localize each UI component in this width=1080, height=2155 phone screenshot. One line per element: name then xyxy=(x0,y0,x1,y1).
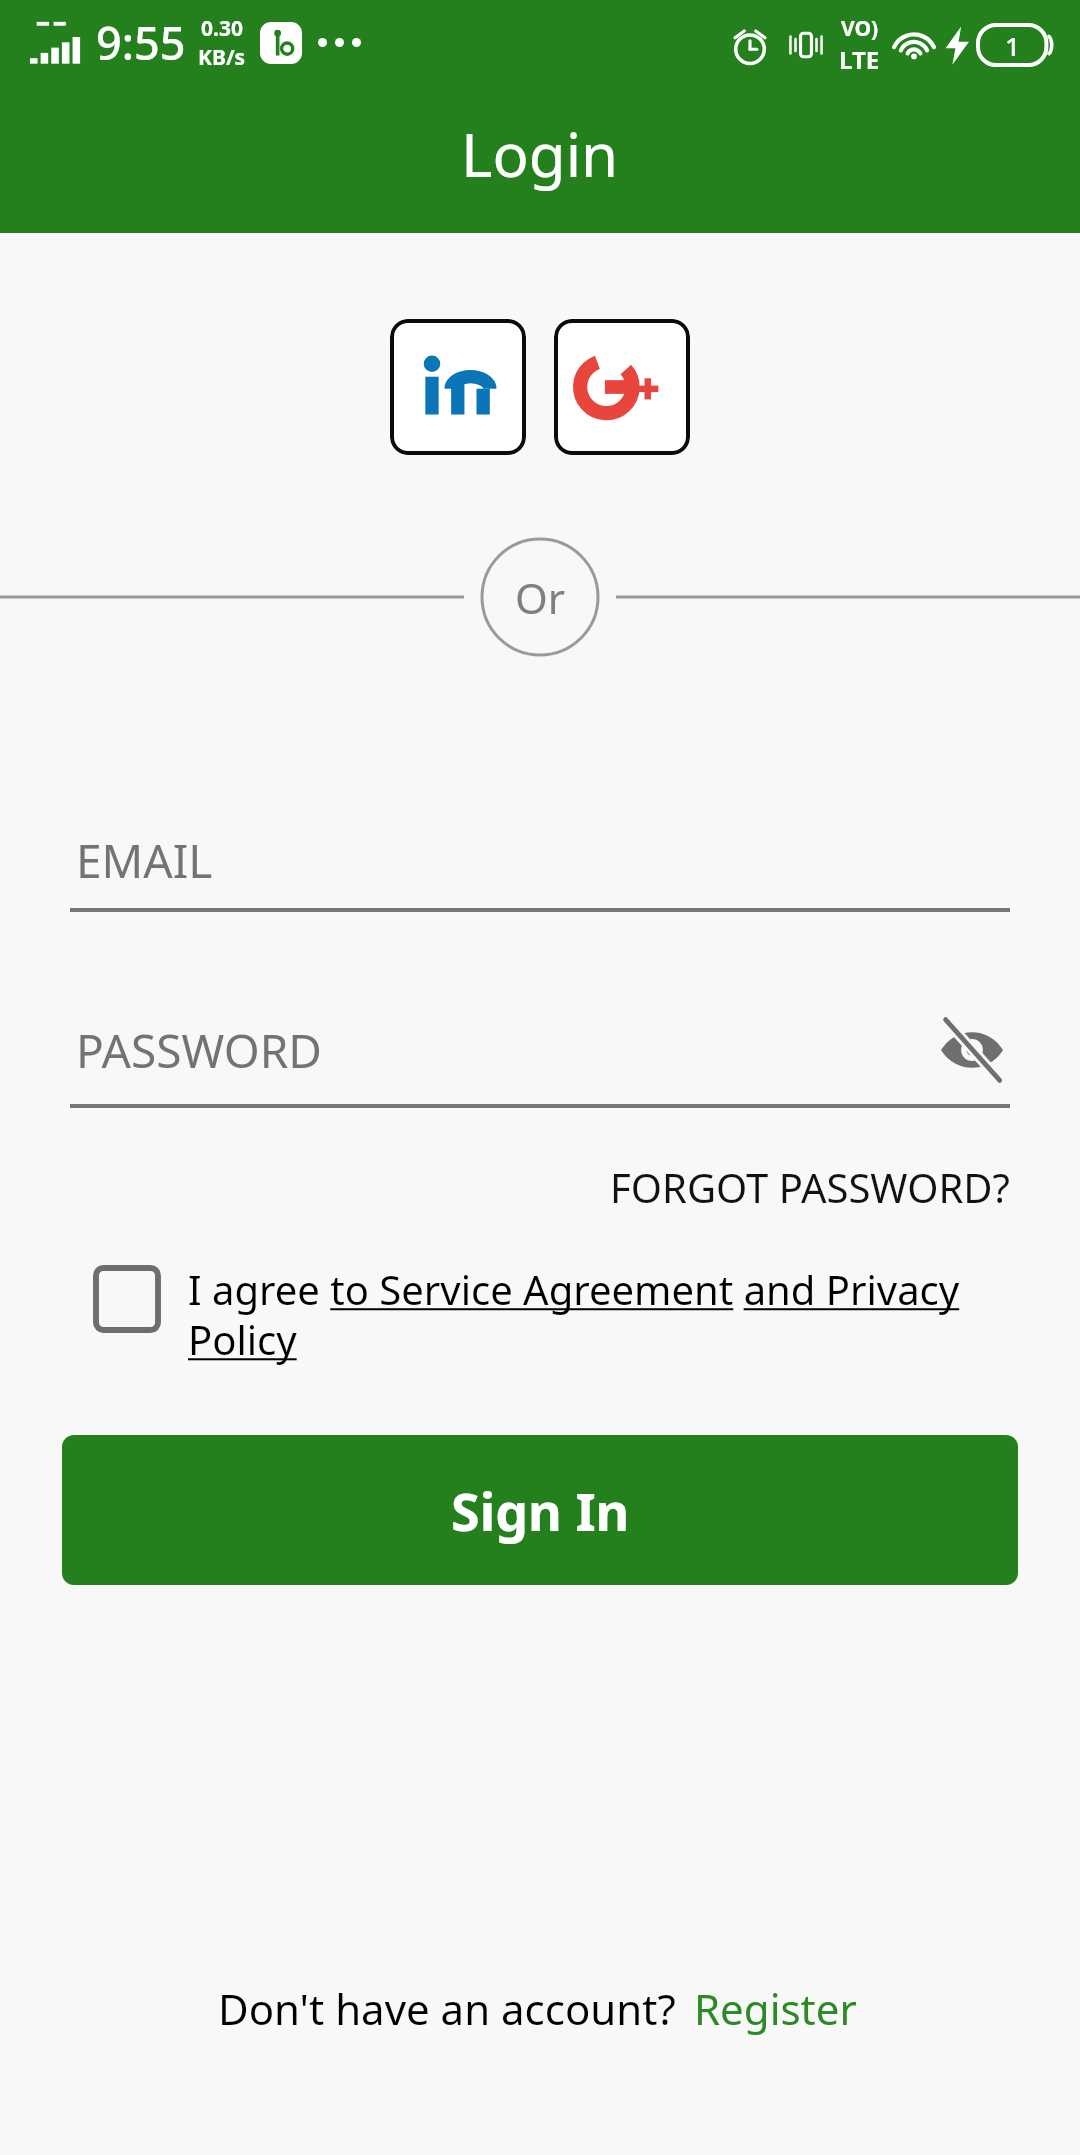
staticText: LTE xyxy=(839,43,880,76)
button[interactable]: FORGOT PASSWORD? xyxy=(540,1146,1080,1228)
staticText: 1 xyxy=(1005,28,1020,63)
staticText: Register xyxy=(694,1980,857,2037)
staticText: KB/s xyxy=(198,43,246,72)
button[interactable]: Show password xyxy=(934,1012,1010,1088)
button[interactable]: Sign in with Google Plus xyxy=(554,319,690,455)
button[interactable]: Sign In xyxy=(62,1435,1018,1585)
staticText: Don't have an account? xyxy=(218,1980,676,2037)
button[interactable]: I agree to Service Agreement and Privacy… xyxy=(0,1252,1080,1377)
staticText: I agree to Service Agreement and Privacy… xyxy=(188,1262,1010,1367)
staticText: Login xyxy=(461,113,619,195)
staticText: Sign In xyxy=(451,1475,630,1546)
button[interactable]: EMAIL xyxy=(70,829,1010,912)
staticText: EMAIL xyxy=(76,829,1010,892)
staticText: Or xyxy=(515,569,566,626)
staticText: 0.30 xyxy=(201,14,243,43)
staticText: PASSWORD xyxy=(76,1019,934,1082)
button[interactable]: Register xyxy=(676,1970,863,2047)
staticText: 9:55 xyxy=(96,12,186,73)
button[interactable]: Sign in with LinkedIn xyxy=(390,319,526,455)
staticText: VO) xyxy=(841,14,879,43)
button[interactable]: PASSWORD xyxy=(70,1012,1010,1108)
